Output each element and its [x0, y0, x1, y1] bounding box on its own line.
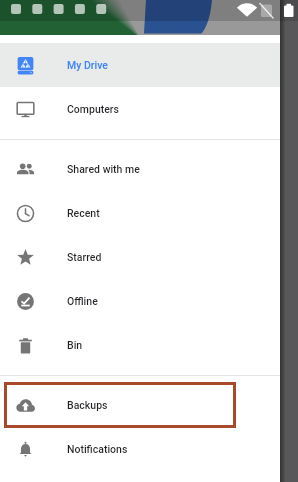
staticText: Offline — [67, 295, 98, 307]
button[interactable]: Bin — [0, 323, 280, 367]
button[interactable]: Notifications — [0, 427, 280, 471]
staticText: Bin — [67, 339, 83, 351]
button[interactable]: Starred — [0, 235, 280, 279]
button[interactable]: Offline — [0, 279, 280, 323]
staticText: Notifications — [67, 443, 128, 455]
staticText: My Drive — [67, 59, 108, 71]
staticText: Shared with me — [67, 163, 140, 175]
button[interactable]: Backups — [0, 383, 280, 427]
staticText: Recent — [67, 207, 100, 219]
button[interactable]: Recent — [0, 191, 280, 235]
staticText: Starred — [67, 251, 102, 263]
button[interactable]: My Drive — [0, 43, 280, 87]
button[interactable]: Computers — [0, 87, 280, 131]
button[interactable]: Shared with me — [0, 147, 280, 191]
staticText: Backups — [67, 399, 108, 411]
staticText: Computers — [67, 103, 119, 115]
